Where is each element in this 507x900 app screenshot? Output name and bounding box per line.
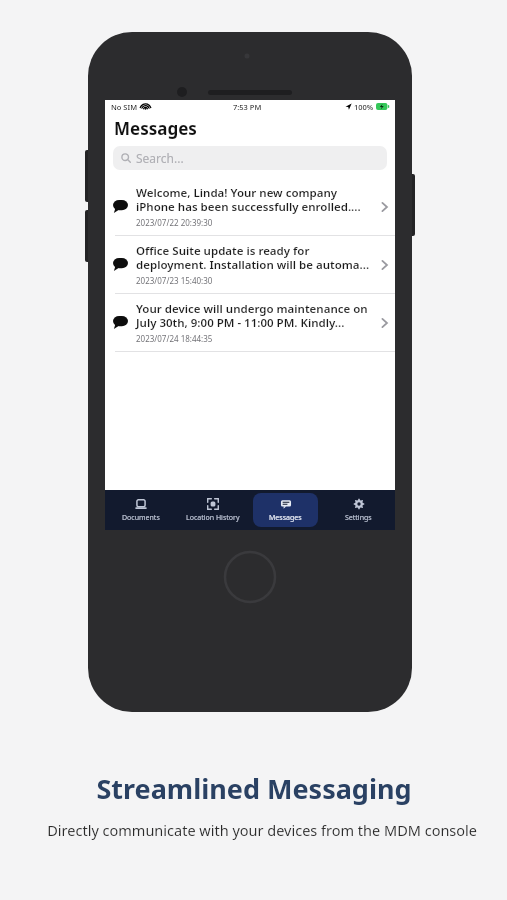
- staticText: Documents: [122, 513, 160, 523]
- button[interactable]: Settings: [326, 493, 391, 527]
- staticText: Messages: [114, 117, 197, 140]
- button[interactable]: Location History: [181, 493, 245, 527]
- staticText: Directly communicate with your devices f…: [30, 820, 477, 840]
- staticText: Streamlined Messaging: [96, 770, 412, 807]
- staticText: Settings: [345, 513, 372, 523]
- staticText: Your device will undergo maintenance on …: [136, 301, 375, 330]
- staticText: 7:53 PM: [233, 102, 262, 112]
- staticText: 2023/07/23 15:40:30: [136, 275, 213, 286]
- staticText: 2023/07/22 20:39:30: [136, 217, 213, 228]
- staticText: No SIM: [111, 102, 138, 112]
- button[interactable]: Search...: [113, 146, 387, 170]
- button[interactable]: Messages: [253, 493, 318, 527]
- staticText: 2023/07/24 18:44:35: [136, 333, 213, 344]
- button[interactable]: Welcome, Linda! Your new company iPhone …: [105, 178, 395, 235]
- button[interactable]: Office Suite update is ready for deploym…: [105, 236, 395, 293]
- staticText: Search...: [136, 150, 184, 166]
- staticText: Messages: [269, 513, 302, 523]
- staticText: Welcome, Linda! Your new company iPhone …: [136, 185, 375, 214]
- staticText: 100%: [354, 102, 374, 112]
- staticText: Office Suite update is ready for deploym…: [136, 243, 375, 272]
- button[interactable]: Documents: [109, 493, 173, 527]
- button[interactable]: Your device will undergo maintenance on …: [105, 294, 395, 351]
- staticText: Location History: [186, 513, 240, 523]
